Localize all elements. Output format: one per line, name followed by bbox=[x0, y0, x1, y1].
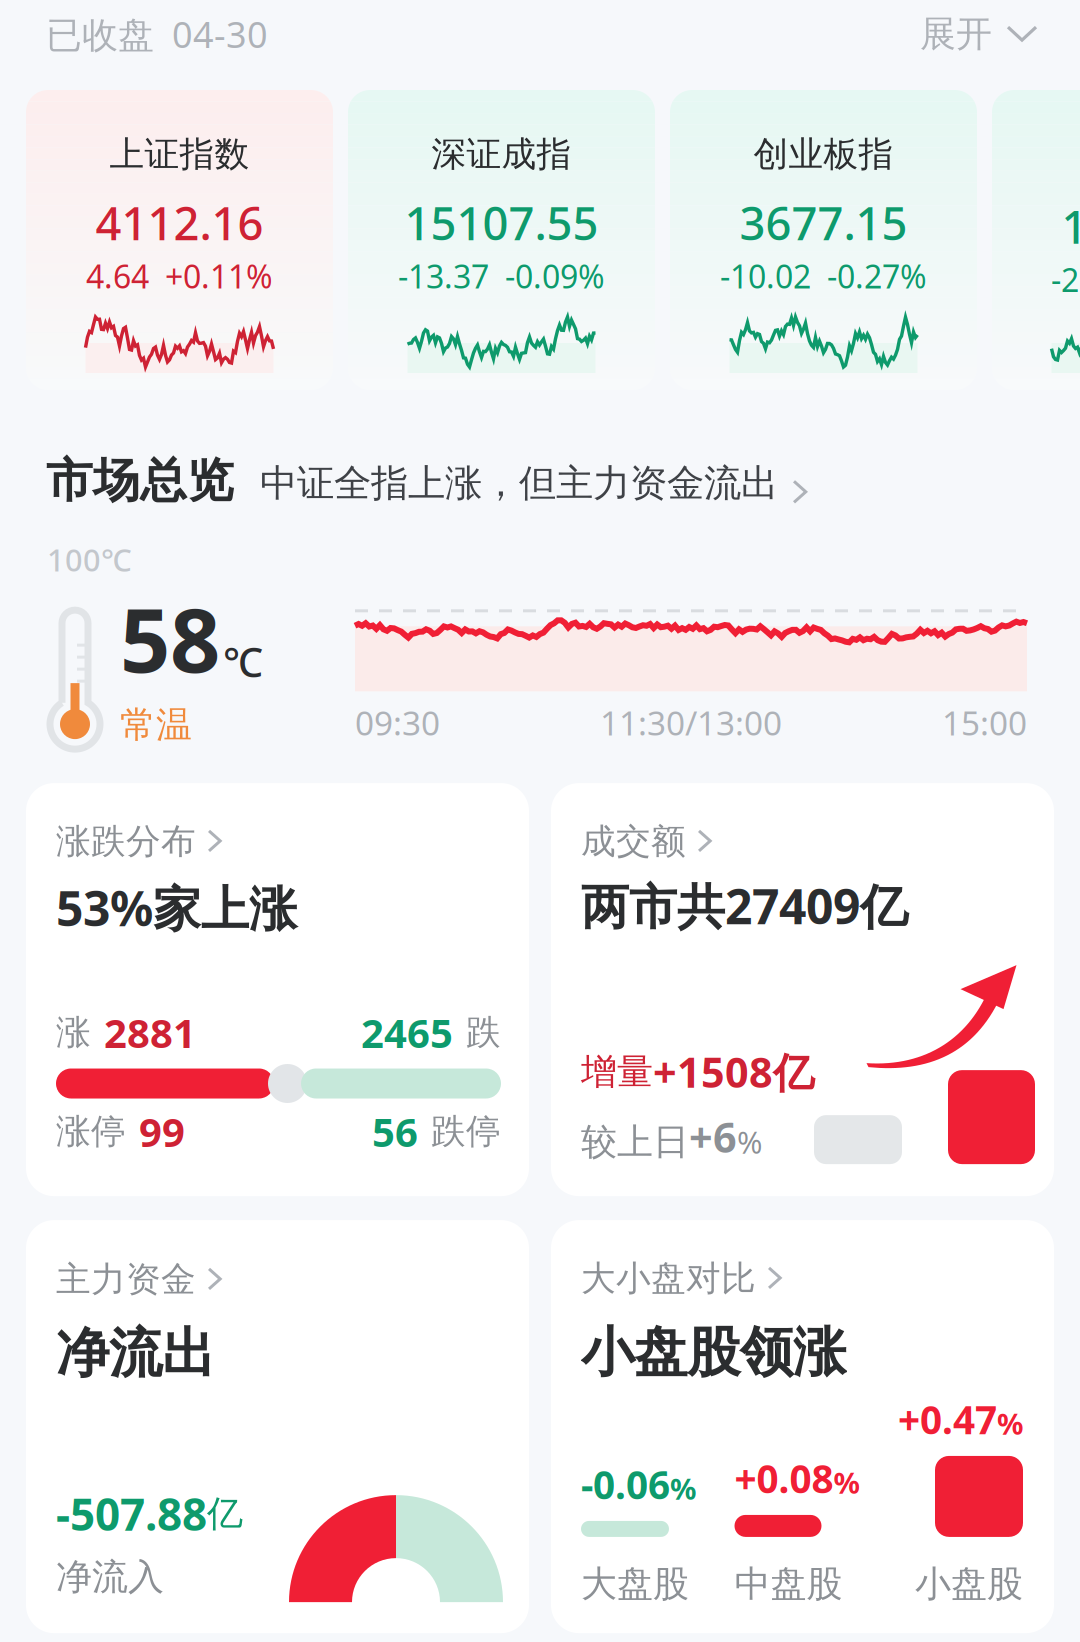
staticText: -10.02 bbox=[720, 255, 811, 297]
button[interactable]: 上证指数 bbox=[26, 90, 333, 390]
staticText: 3677.15 bbox=[739, 193, 907, 253]
staticText: 小盘股 bbox=[915, 1562, 1023, 1606]
staticText: 跌停 bbox=[431, 1110, 501, 1153]
staticText: 小盘股领涨 bbox=[581, 1320, 846, 1385]
staticText: -0.09% bbox=[505, 255, 605, 297]
staticText: 上证指数 bbox=[109, 133, 249, 176]
staticText: 净流出 bbox=[56, 1321, 215, 1386]
staticText: -2.15 bbox=[1051, 258, 1080, 301]
staticText: -507.88 bbox=[56, 1484, 207, 1543]
staticText: 展开 bbox=[920, 12, 992, 56]
staticText: % bbox=[833, 1463, 859, 1502]
staticText: -0.06 bbox=[581, 1459, 670, 1510]
staticText: 涨停 bbox=[56, 1110, 126, 1153]
button[interactable]: 科创50 bbox=[992, 90, 1080, 390]
button[interactable]: 展开 bbox=[920, 12, 1038, 56]
staticText: 亿 bbox=[207, 1492, 243, 1536]
staticText: 53%家上涨 bbox=[56, 876, 297, 939]
staticText: 2881 bbox=[104, 1006, 196, 1059]
staticText: 较上日 bbox=[581, 1120, 689, 1164]
staticText: 两市共27409亿 bbox=[581, 874, 908, 937]
staticText: 58 bbox=[120, 580, 220, 697]
staticText: +1508亿 bbox=[653, 1044, 814, 1099]
button[interactable]: 深证成指 bbox=[348, 90, 655, 390]
staticText: 4.64 bbox=[86, 255, 149, 297]
staticText: 15107.55 bbox=[404, 193, 598, 253]
button[interactable]: 主力资金 bbox=[26, 1220, 529, 1633]
staticText: -0.27% bbox=[827, 255, 927, 297]
staticText: 增量 bbox=[581, 1050, 653, 1094]
staticText: 深证成指 bbox=[431, 133, 571, 176]
staticText: % bbox=[737, 1121, 762, 1162]
staticText: +0.47 bbox=[898, 1394, 997, 1445]
staticText: 常温 bbox=[120, 703, 192, 747]
button[interactable]: 涨跌分布 bbox=[26, 783, 529, 1196]
button[interactable]: 创业板指 bbox=[670, 90, 977, 390]
staticText: 99 bbox=[139, 1105, 185, 1158]
staticText: 中盘股 bbox=[734, 1562, 842, 1606]
staticText: -13.37 bbox=[398, 255, 489, 297]
button[interactable]: 大小盘对比 bbox=[551, 1220, 1054, 1633]
staticText: 大盘股 bbox=[581, 1562, 689, 1606]
staticText: 11:30/13:00 bbox=[600, 700, 782, 745]
staticText: 2465 bbox=[361, 1006, 453, 1059]
staticText: 主力资金 bbox=[56, 1258, 196, 1301]
staticText: +6 bbox=[689, 1109, 737, 1164]
staticText: 中证全指上涨，但主力资金流出 bbox=[260, 460, 778, 506]
staticText: 创业板指 bbox=[753, 133, 893, 176]
staticText: % bbox=[997, 1404, 1023, 1443]
staticText: 大小盘对比 bbox=[581, 1257, 756, 1300]
staticText: 净流入 bbox=[56, 1555, 164, 1599]
staticText: % bbox=[670, 1469, 696, 1508]
staticText: 成交额 bbox=[581, 820, 686, 863]
staticText: +0.11% bbox=[165, 255, 273, 297]
staticText: 1123.44 bbox=[1061, 196, 1080, 256]
staticText: 15:00 bbox=[942, 700, 1027, 745]
staticText: 涨跌分布 bbox=[56, 820, 196, 863]
staticText: +0.08 bbox=[734, 1453, 833, 1504]
staticText: 涨 bbox=[56, 1011, 91, 1054]
staticText: 已收盘 04-30 bbox=[46, 10, 268, 58]
button[interactable]: 成交额 bbox=[551, 783, 1054, 1196]
staticText: 09:30 bbox=[355, 700, 440, 745]
staticText: ℃ bbox=[223, 635, 263, 688]
staticText: 市场总览 bbox=[46, 452, 234, 509]
staticText: 100℃ bbox=[47, 539, 132, 580]
staticText: 56 bbox=[372, 1105, 418, 1158]
staticText: 4112.16 bbox=[95, 193, 263, 253]
staticText: 跌 bbox=[466, 1011, 501, 1054]
